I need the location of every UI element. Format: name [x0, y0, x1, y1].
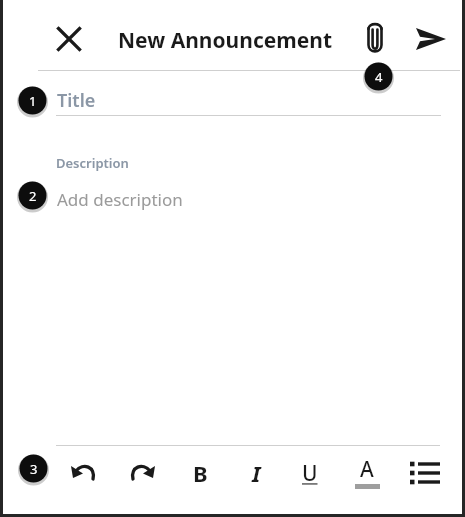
button[interactable]: Attach: [354, 18, 396, 60]
staticText: A: [346, 455, 388, 481]
button[interactable]: Send: [410, 18, 452, 60]
button[interactable]: Underline: [289, 452, 331, 494]
staticText: B: [193, 458, 208, 488]
button[interactable]: Close: [47, 17, 91, 61]
button[interactable]: Text color: [346, 452, 388, 494]
staticText: Title: [57, 88, 96, 113]
staticText: I: [252, 458, 261, 488]
staticText: 2: [29, 187, 37, 205]
button[interactable]: Redo: [120, 452, 162, 494]
button[interactable]: Italic: [235, 452, 277, 494]
button[interactable]: Undo: [64, 452, 106, 494]
staticText: New Announcement: [118, 26, 333, 55]
staticText: 3: [30, 460, 38, 478]
staticText: U: [302, 459, 318, 488]
staticText: Description: [56, 154, 129, 172]
staticText: 4: [375, 68, 383, 86]
staticText: 1: [29, 92, 37, 110]
button[interactable]: Bulleted list: [402, 452, 444, 494]
staticText: Add description: [57, 188, 183, 211]
button[interactable]: Bold: [179, 452, 221, 494]
button[interactable]: Title: [38, 83, 440, 116]
button[interactable]: Add description: [38, 183, 440, 423]
